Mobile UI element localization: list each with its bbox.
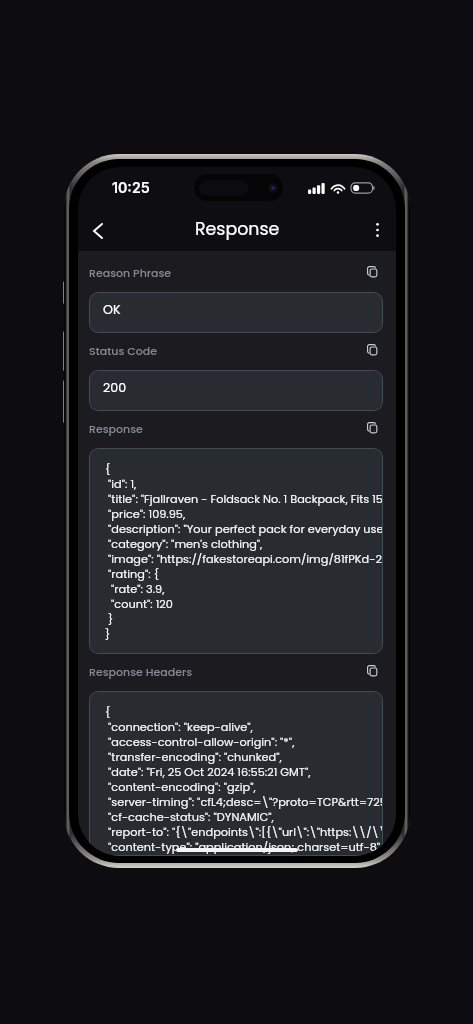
button[interactable]: Copy Status Code — [361, 339, 383, 361]
staticText: Response — [195, 217, 280, 241]
button[interactable]: Back — [79, 212, 117, 250]
button[interactable]: More options — [360, 213, 394, 247]
button[interactable]: Copy Response Headers — [361, 660, 383, 682]
button[interactable]: OK — [89, 292, 383, 333]
staticText: Reason Phrase — [89, 265, 172, 280]
staticText: 10:25 — [112, 179, 150, 196]
button[interactable]: Copy Reason Phrase — [361, 261, 383, 283]
staticText: Response — [89, 421, 143, 436]
button[interactable]: { "connection": "keep-alive", "access-co… — [89, 691, 383, 856]
button[interactable]: 200 — [89, 370, 383, 411]
staticText: { "connection": "keep-alive", "access-co… — [105, 704, 383, 856]
staticText: OK — [103, 301, 121, 319]
staticText: { "id": 1, "title": "Fjallraven - Foldsa… — [105, 461, 383, 642]
staticText: Status Code — [89, 343, 157, 358]
button[interactable]: { "id": 1, "title": "Fjallraven - Foldsa… — [89, 448, 383, 654]
staticText: Response Headers — [89, 664, 193, 679]
button[interactable]: Copy Response — [361, 417, 383, 439]
staticText: 200 — [103, 379, 127, 397]
